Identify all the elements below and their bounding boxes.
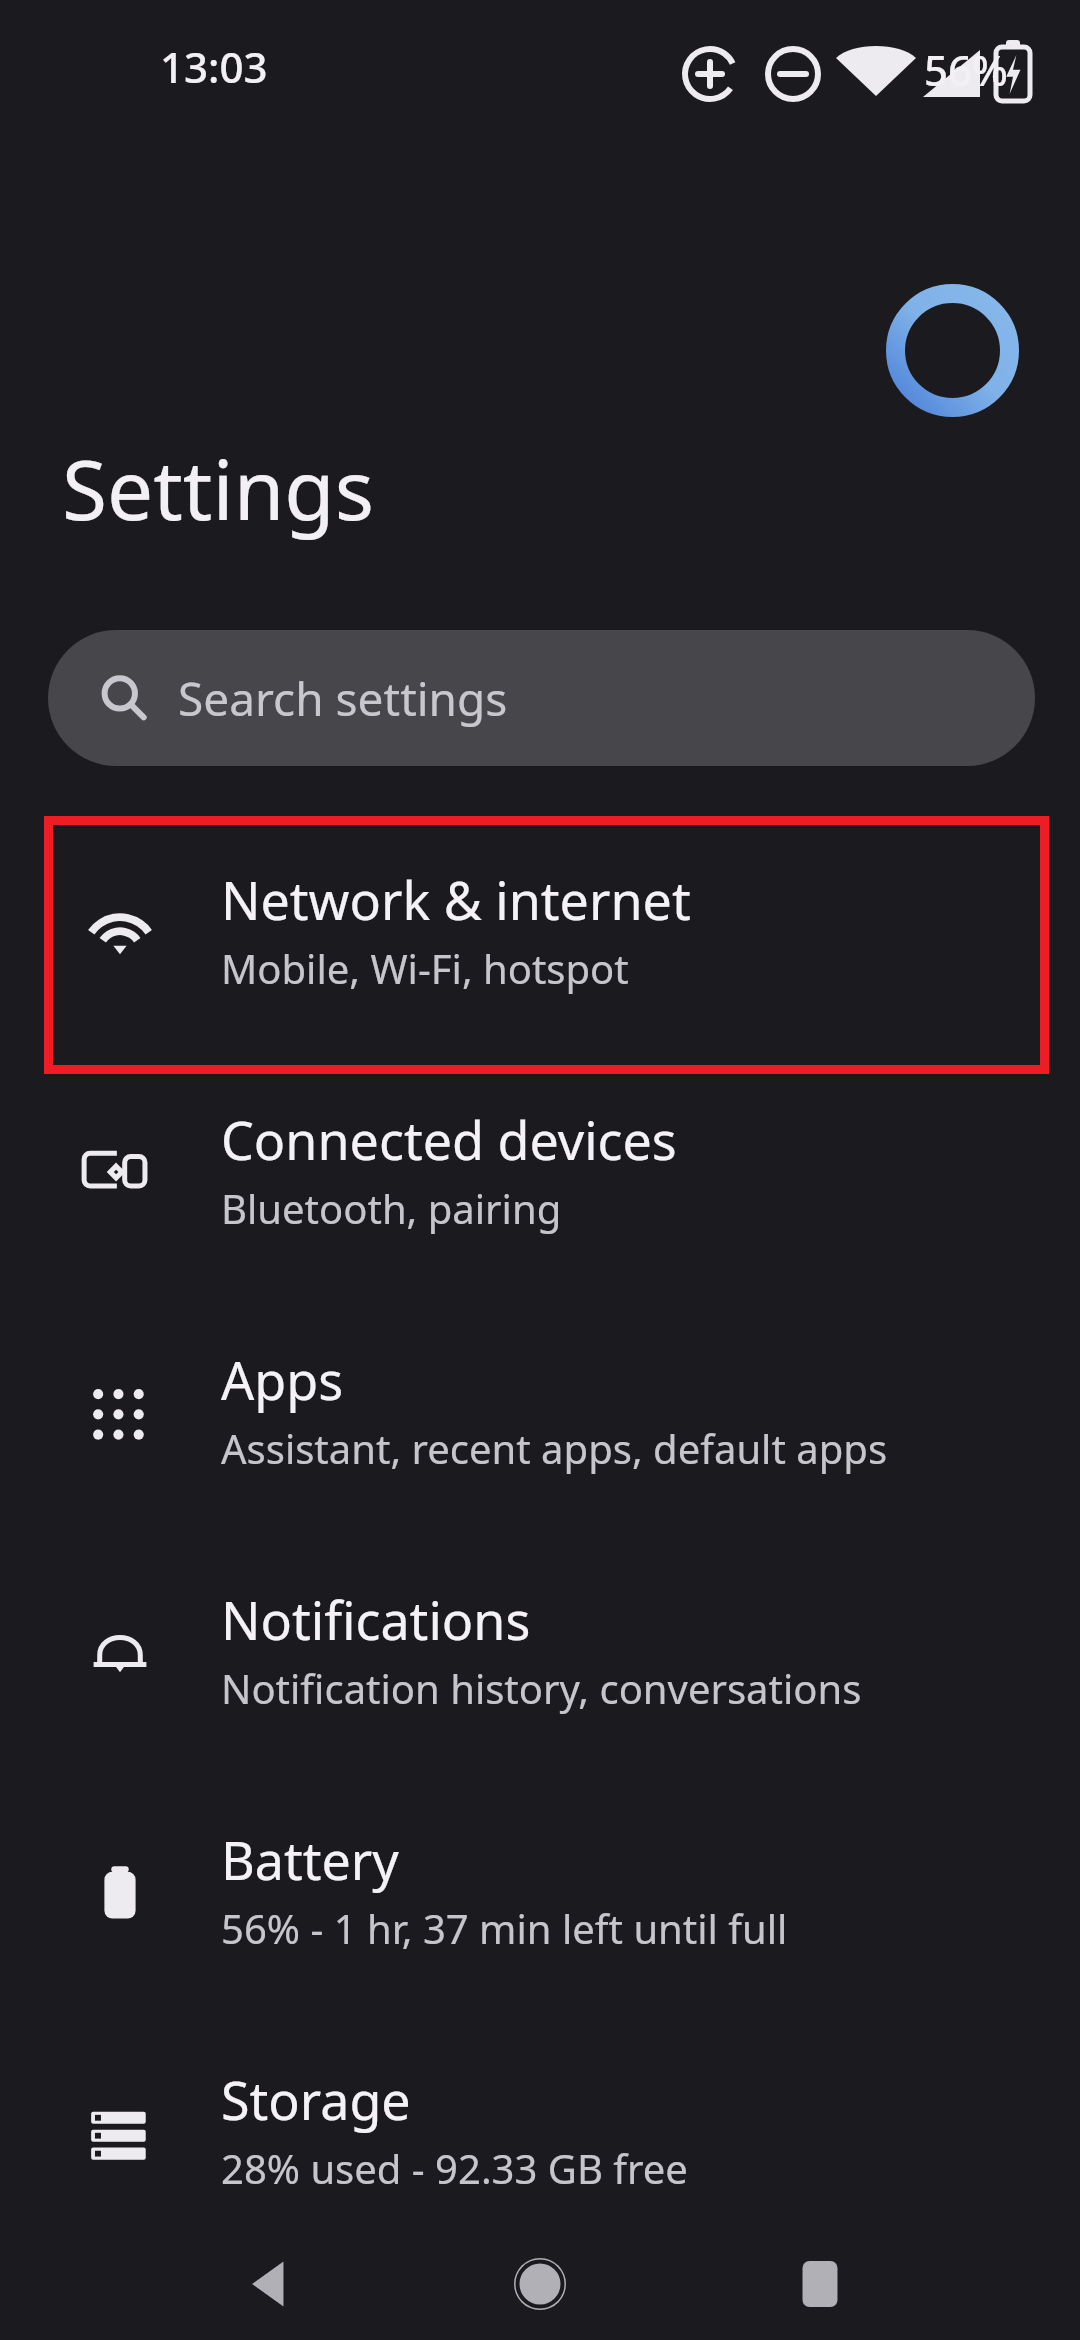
staticText: 13:03 [160,38,268,95]
staticText: Settings [62,432,375,544]
staticText: 28% used - 92.33 GB free [221,2141,688,2195]
button[interactable]: Connected devices [0,1070,1080,1310]
button[interactable]: Search settings [48,630,1035,766]
button[interactable]: Apps [0,1310,1080,1550]
button[interactable]: Notifications [0,1550,1080,1790]
staticText: Storage [221,2064,411,2135]
button[interactable]: Recent apps [750,2228,890,2340]
button[interactable]: Back [200,2228,340,2340]
button[interactable]: Home [470,2228,610,2340]
button[interactable]: Network & internet [0,830,1080,1070]
staticText: Notification history, conversations [221,1661,862,1715]
staticText: Mobile, Wi-Fi, hotspot [221,941,629,995]
staticText: Notifications [221,1584,531,1655]
staticText: Network & internet [221,864,691,935]
button[interactable]: Storage [0,2030,1080,2270]
button[interactable]: Account [880,278,1025,423]
staticText: Search settings [178,667,508,730]
staticText: Connected devices [221,1104,677,1175]
staticText: 56% - 1 hr, 37 min left until full [221,1901,788,1955]
staticText: Apps [221,1344,344,1415]
button[interactable]: Battery [0,1790,1080,2030]
staticText: 56% [924,41,1008,98]
staticText: Battery [221,1824,399,1895]
staticText: Bluetooth, pairing [221,1181,562,1235]
staticText: Assistant, recent apps, default apps [221,1421,888,1475]
